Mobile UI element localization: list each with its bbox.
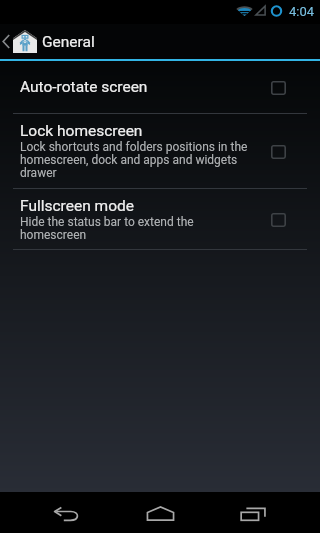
staticText: Lock shortcuts and folders positions in …	[20, 140, 251, 180]
staticText: General	[42, 33, 95, 51]
staticText: 4:04	[289, 4, 315, 19]
button[interactable]: Navigate up, General	[0, 24, 320, 59]
button[interactable]: Back	[19, 492, 113, 533]
staticText: Hide the status bar to extend the homesc…	[20, 215, 251, 242]
staticText: Auto-rotate screen	[20, 78, 148, 96]
button[interactable]: Home	[113, 492, 207, 533]
button[interactable]: Recent apps	[207, 492, 301, 533]
button[interactable]: Auto-rotate screen	[0, 61, 320, 113]
button[interactable]: Lock homescreen	[0, 114, 320, 188]
button[interactable]: Fullscreen mode	[0, 189, 320, 249]
staticText: Lock homescreen	[20, 122, 143, 140]
staticText: Fullscreen mode	[20, 197, 134, 215]
